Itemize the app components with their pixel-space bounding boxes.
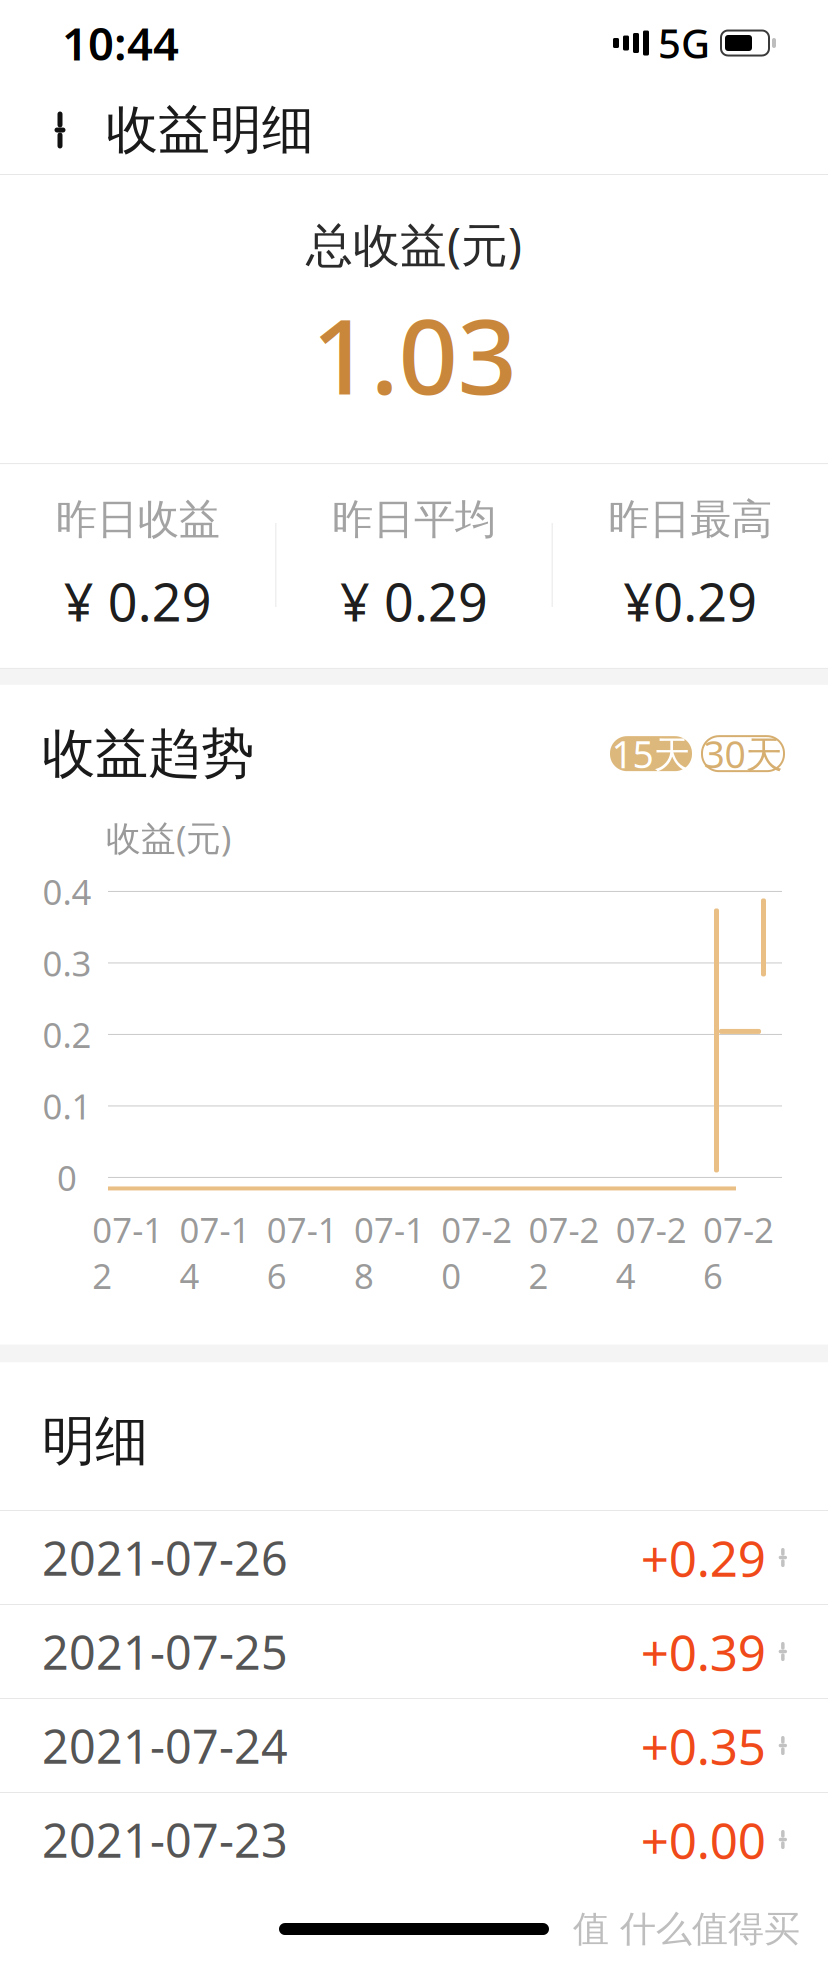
button[interactable]: 返回 [22, 92, 98, 168]
staticText: 收益(元) [106, 814, 231, 860]
staticText: 07-20 [441, 1206, 512, 1298]
staticText: 收益趋势 [42, 721, 254, 786]
staticText: +0.29 [641, 1525, 766, 1590]
staticText: +0.39 [641, 1619, 766, 1684]
staticText: 2021-07-23 [42, 1808, 288, 1870]
staticText: 07-14 [179, 1206, 250, 1298]
button[interactable]: 2021-07-24 [0, 1699, 828, 1793]
staticText: 2021-07-25 [42, 1620, 288, 1682]
staticText: 2021-07-24 [42, 1714, 288, 1776]
staticText: ¥ 0.29 [64, 567, 212, 636]
button[interactable]: 30天 [702, 736, 784, 771]
staticText: 1.03 [311, 285, 516, 423]
staticText: 0.3 [42, 940, 91, 986]
staticText: 收益明细 [106, 98, 314, 162]
staticText: 0.1 [42, 1083, 91, 1129]
staticText: 昨日收益 [56, 494, 220, 545]
button[interactable]: 2021-07-25 [0, 1605, 828, 1699]
staticText: 15天 [611, 729, 690, 778]
staticText: 07-22 [528, 1206, 599, 1298]
staticText: ¥ 0.29 [340, 567, 488, 636]
staticText: 07-18 [354, 1206, 425, 1298]
staticText: 2021-07-26 [42, 1526, 288, 1588]
staticText: 昨日最高 [608, 494, 772, 545]
button[interactable]: 15天 [610, 736, 692, 771]
staticText: 07-12 [92, 1206, 163, 1298]
staticText: 07-26 [703, 1206, 774, 1298]
staticText: 07-16 [267, 1206, 338, 1298]
staticText: 0 [57, 1154, 77, 1200]
button[interactable]: 2021-07-26 [0, 1511, 828, 1605]
staticText: 昨日平均 [332, 494, 496, 545]
staticText: +0.35 [641, 1713, 766, 1778]
staticText: 10:44 [62, 13, 179, 73]
staticText: +0.00 [641, 1807, 766, 1872]
staticText: 30天 [703, 729, 782, 778]
staticText: ¥0.29 [623, 567, 757, 636]
button[interactable]: 2021-07-23 [0, 1793, 828, 1886]
staticText: 5G [658, 16, 710, 69]
staticText: 07-24 [616, 1206, 687, 1298]
staticText: 值 什么值得买 [573, 1907, 800, 1951]
staticText: 0.2 [42, 1011, 91, 1057]
staticText: 明细 [42, 1408, 148, 1474]
staticText: 0.4 [42, 868, 91, 914]
staticText: 总收益(元) [306, 213, 522, 275]
